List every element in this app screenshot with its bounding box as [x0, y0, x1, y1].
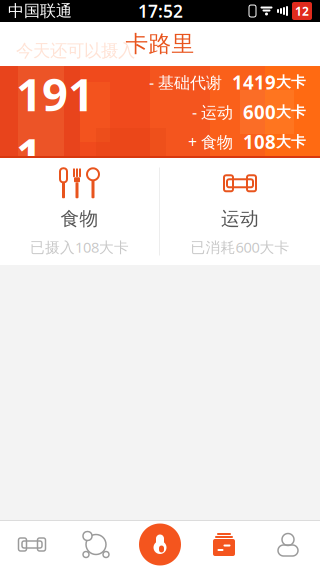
button[interactable]: 卡路里 [128, 520, 192, 569]
staticText: 已摄入108大卡 [30, 237, 129, 257]
staticText: 卡路里 [125, 30, 194, 58]
staticText: 今天还可以摄入 [16, 40, 135, 61]
staticText: + 食物 [188, 131, 233, 152]
staticText: 大卡 [276, 133, 306, 151]
staticText: 中国联通 [8, 1, 72, 21]
button[interactable]: 我的 [256, 520, 320, 569]
staticText: 已消耗600大卡 [190, 237, 289, 257]
staticText: 1911 [16, 63, 94, 184]
staticText: 食物 [60, 207, 98, 230]
staticText: 1419 [222, 70, 276, 95]
button[interactable]: 训练 [0, 520, 64, 569]
staticText: 108 [233, 129, 276, 154]
staticText: 17:52 [138, 0, 183, 22]
staticText: 600 [233, 100, 276, 124]
staticText: 大卡 [97, 157, 135, 180]
staticText: - 运动 [192, 101, 233, 123]
staticText: 运动 [221, 207, 259, 230]
button[interactable]: 社区 [64, 520, 128, 569]
staticText: 12 [295, 3, 309, 19]
button[interactable]: 食物 [0, 159, 159, 264]
staticText: 大卡 [276, 103, 306, 121]
button[interactable]: 运动 [160, 159, 320, 264]
button[interactable]: 记录 [192, 520, 256, 569]
staticText: - 基础代谢 [149, 72, 222, 93]
staticText: 大卡 [276, 73, 306, 91]
